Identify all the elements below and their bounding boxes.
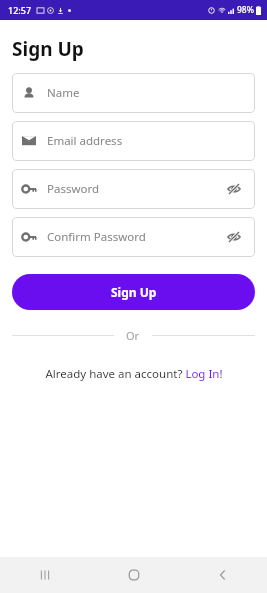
staticText: Sign Up (12, 36, 84, 62)
staticText: Sign Up (111, 284, 157, 300)
button[interactable]: Recent apps (27, 557, 63, 593)
button[interactable]: Show password (223, 226, 245, 248)
staticText: Confirm Password (47, 229, 223, 245)
button[interactable]: Show password (223, 178, 245, 200)
button[interactable]: Confirm Password (12, 217, 255, 257)
staticText: Or (126, 328, 140, 343)
button[interactable]: Back (205, 557, 241, 593)
button[interactable]: Sign Up (12, 274, 255, 310)
staticText: 12:57 (8, 4, 32, 16)
button[interactable]: Email address (12, 121, 255, 161)
staticText: Email address (47, 133, 245, 149)
button[interactable]: Already have an account? Log In! (12, 366, 255, 382)
staticText: Password (47, 181, 223, 197)
button[interactable]: Home (116, 557, 152, 593)
staticText: Name (47, 85, 245, 101)
button[interactable]: Name (12, 73, 255, 113)
staticText: Already have an account? Log In! (45, 366, 223, 382)
staticText: 98% (237, 4, 254, 16)
button[interactable]: Password (12, 169, 255, 209)
